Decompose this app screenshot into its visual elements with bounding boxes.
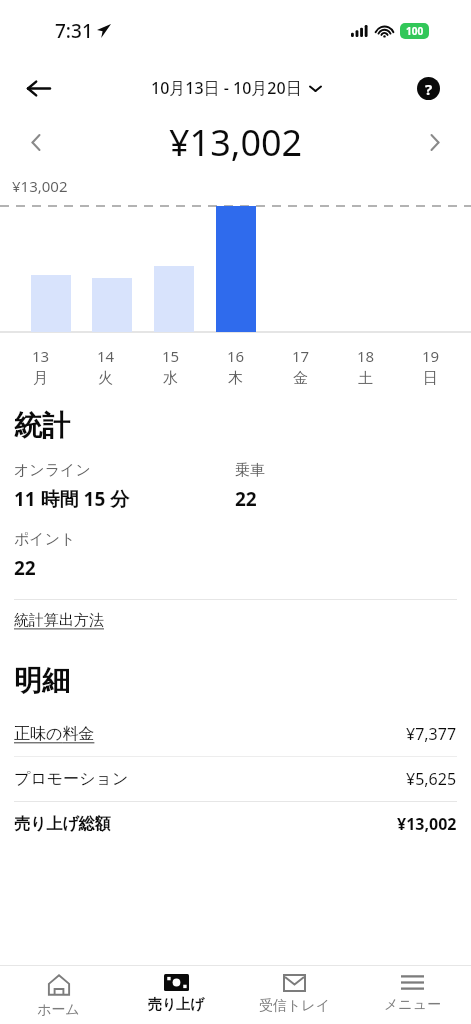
staticText: ? — [425, 79, 433, 99]
button[interactable]: メニュー — [353, 966, 471, 1024]
staticText: ポイント — [14, 530, 76, 549]
staticText: ¥5,625 — [406, 768, 457, 790]
staticText: 売り上げ — [148, 996, 205, 1014]
button[interactable]: 10月13日 - 10月20日 — [151, 77, 321, 99]
staticText: 受信トレイ — [259, 997, 330, 1015]
staticText: 14 — [97, 346, 115, 366]
staticText: 日 — [423, 369, 438, 388]
staticText: ホーム — [37, 1001, 80, 1019]
staticText: 100 — [406, 24, 424, 38]
staticText: 統計 — [14, 408, 70, 443]
button[interactable]: Previous week — [18, 124, 54, 160]
staticText: 正味の料金 — [14, 724, 406, 744]
button[interactable]: Back — [18, 68, 58, 108]
staticText: ¥13,002 — [169, 118, 303, 167]
staticText: 13 — [32, 346, 50, 366]
staticText: 水 — [163, 369, 178, 388]
staticText: 18 — [357, 346, 375, 366]
staticText: 15 — [162, 346, 180, 366]
staticText: 木 — [228, 369, 243, 388]
staticText: ¥13,002 — [12, 176, 68, 196]
staticText: 金 — [293, 369, 308, 388]
staticText: 売り上げ総額 — [14, 814, 397, 834]
button[interactable]: 統計算出方法 — [14, 600, 457, 641]
button[interactable]: 正味の料金 — [14, 712, 457, 756]
staticText: 19 — [422, 346, 440, 366]
staticText: 22 — [14, 555, 36, 581]
staticText: 統計算出方法 — [14, 611, 104, 630]
staticText: 17 — [292, 346, 310, 366]
staticText: メニュー — [384, 996, 441, 1014]
staticText: オンライン — [14, 461, 91, 480]
button[interactable]: プロモーション — [14, 757, 457, 801]
staticText: 16 — [227, 346, 245, 366]
staticText: 月 — [33, 369, 48, 388]
staticText: 乗車 — [235, 461, 265, 480]
staticText: 11 時間 15 分 — [14, 486, 130, 512]
staticText: ¥7,377 — [406, 723, 457, 745]
button[interactable]: 売り上げ — [117, 966, 235, 1024]
staticText: ¥13,002 — [397, 813, 457, 835]
staticText: プロモーション — [14, 769, 406, 789]
staticText: 7:31 — [55, 18, 93, 44]
staticText: 土 — [358, 369, 373, 388]
button[interactable]: 売り上げ総額 — [14, 802, 457, 846]
staticText: 火 — [98, 369, 113, 388]
button[interactable]: ホーム — [0, 966, 117, 1024]
staticText: 22 — [235, 486, 257, 512]
staticText: 10月13日 - 10月20日 — [151, 77, 302, 99]
button[interactable]: Next week — [417, 124, 453, 160]
button[interactable]: 受信トレイ — [235, 966, 353, 1024]
staticText: 明細 — [14, 663, 70, 698]
button[interactable]: Help — [411, 71, 445, 105]
